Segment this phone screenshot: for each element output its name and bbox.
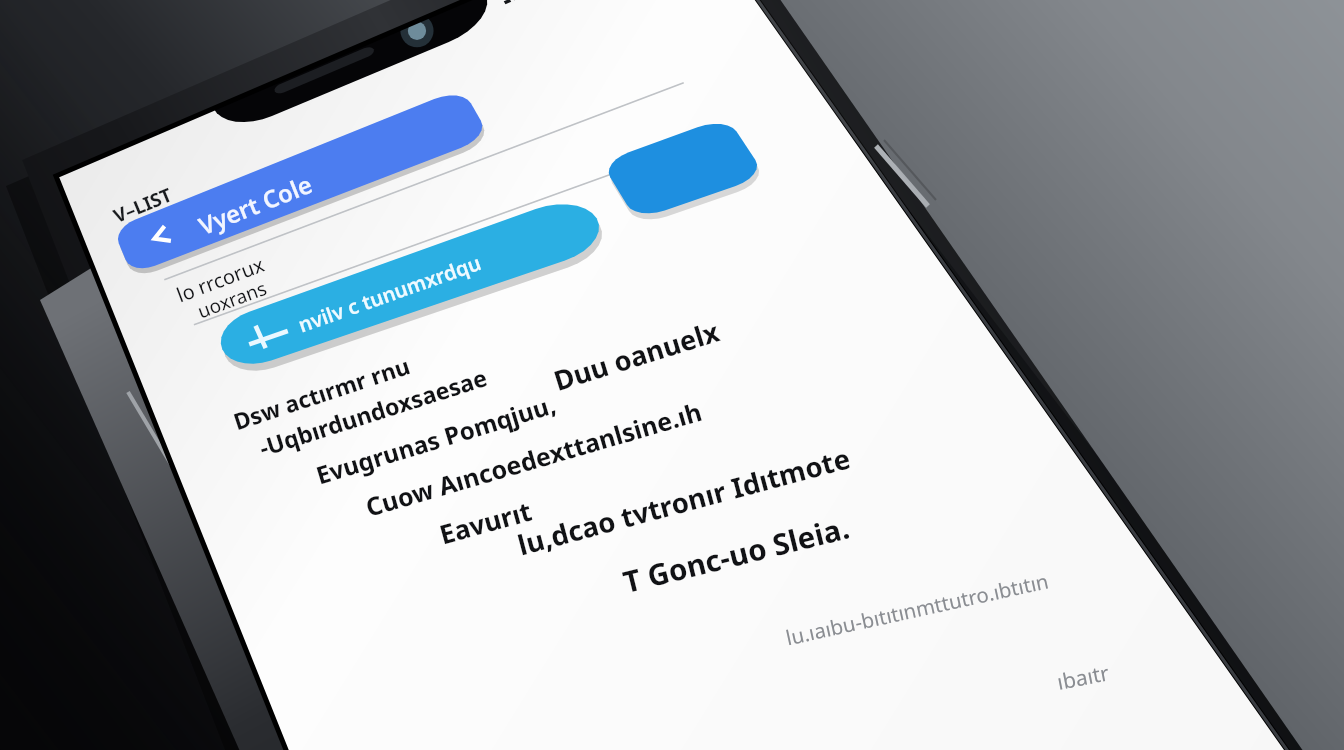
button[interactable]: Phone app screen mockup <box>0 0 1344 750</box>
